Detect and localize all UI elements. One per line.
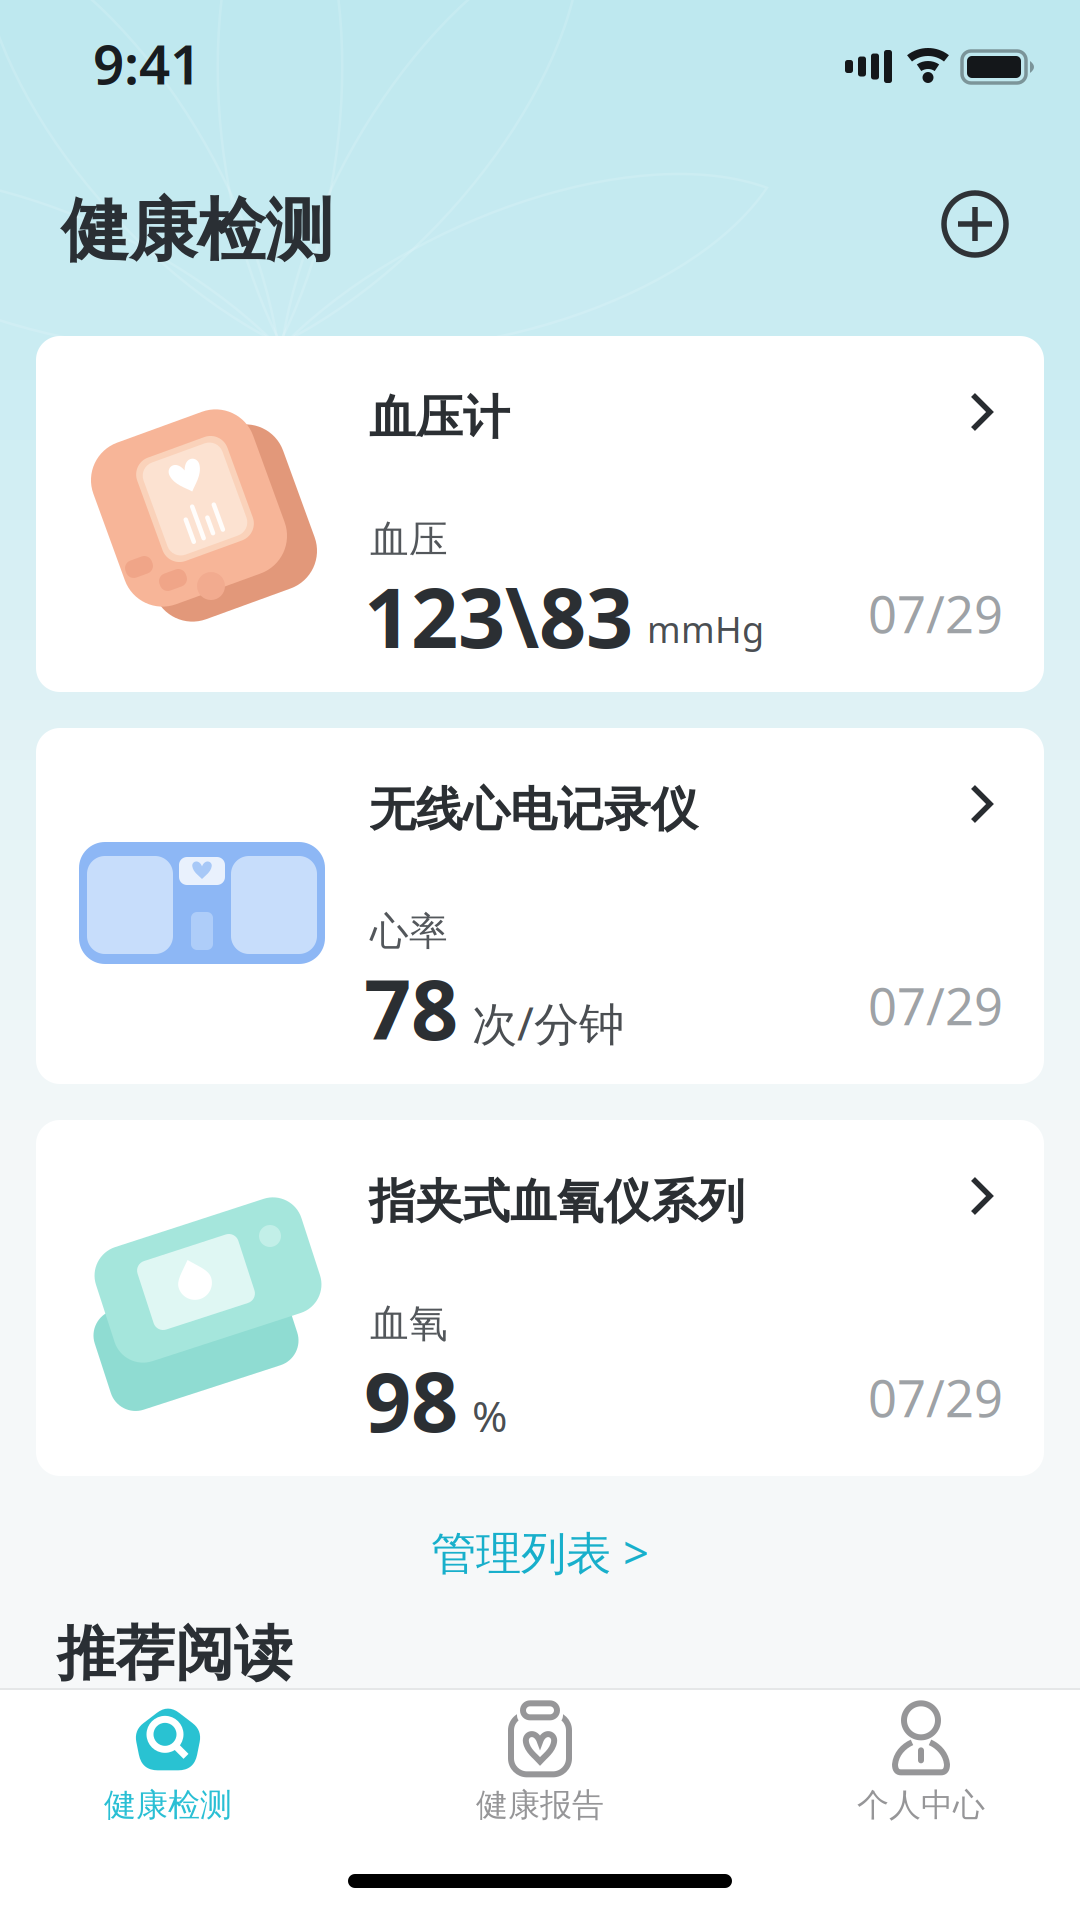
staticText: 管理列表 >: [431, 1522, 649, 1582]
button[interactable]: 健康报告: [410, 1694, 670, 1834]
staticText: 123\83: [364, 561, 633, 671]
staticText: 健康报告: [476, 1785, 604, 1825]
staticText: 次/分钟: [472, 993, 624, 1053]
staticText: 血氧: [370, 1300, 448, 1347]
staticText: 心率: [370, 908, 448, 955]
staticText: mmHg: [647, 605, 764, 653]
button[interactable]: Add device: [941, 190, 1009, 258]
staticText: %: [472, 1387, 507, 1444]
button[interactable]: 指夹式血氧仪系列: [36, 1120, 1044, 1476]
staticText: 07/29: [868, 1364, 1003, 1431]
staticText: 个人中心: [857, 1785, 985, 1825]
staticText: 98: [364, 1345, 458, 1455]
button[interactable]: 无线心电记录仪: [36, 728, 1044, 1084]
button[interactable]: 个人中心: [791, 1694, 1051, 1834]
staticText: 07/29: [868, 580, 1003, 647]
staticText: 9:41: [93, 27, 201, 100]
button[interactable]: 健康检测: [38, 1694, 298, 1834]
button[interactable]: 血压计: [36, 336, 1044, 692]
staticText: 血压: [370, 516, 448, 563]
button[interactable]: 管理列表 >: [0, 1520, 1080, 1584]
staticText: 健康检测: [104, 1785, 232, 1825]
staticText: 推荐阅读: [57, 1618, 293, 1690]
staticText: 血压计: [369, 389, 510, 446]
staticText: 指夹式血氧仪系列: [369, 1173, 745, 1230]
staticText: 78: [364, 953, 458, 1063]
staticText: 健康检测: [61, 189, 333, 272]
staticText: 无线心电记录仪: [369, 781, 698, 838]
staticText: 07/29: [868, 972, 1003, 1039]
